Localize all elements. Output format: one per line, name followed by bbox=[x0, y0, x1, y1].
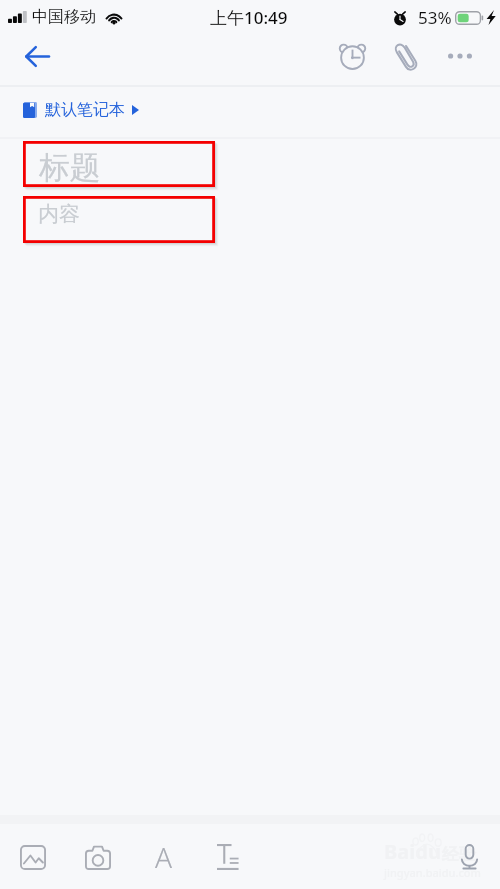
button[interactable]: Title field bbox=[23, 141, 215, 187]
button[interactable]: Back bbox=[13, 32, 61, 80]
staticText: 内容 bbox=[38, 201, 80, 227]
staticText: 标题 bbox=[39, 148, 101, 187]
staticText: jingyan.baidu.com bbox=[384, 865, 481, 880]
staticText: 53% bbox=[418, 6, 452, 29]
button[interactable]: Camera bbox=[75, 834, 121, 880]
button[interactable]: Content field bbox=[23, 196, 215, 243]
staticText: 经验 bbox=[442, 844, 476, 865]
button[interactable]: 默认笔记本 bbox=[0, 94, 139, 126]
staticText: A bbox=[155, 838, 173, 876]
staticText: 上午10:49 bbox=[210, 6, 288, 29]
button[interactable]: More options bbox=[438, 34, 482, 78]
button[interactable]: Font style bbox=[141, 834, 187, 880]
button[interactable]: Text formatting bbox=[205, 834, 251, 880]
button[interactable]: Attachment bbox=[385, 36, 429, 80]
button[interactable]: Insert image bbox=[10, 834, 56, 880]
staticText: 中国移动 bbox=[32, 7, 96, 27]
button[interactable]: Reminder bbox=[330, 34, 374, 78]
button[interactable]: Voice input bbox=[447, 835, 491, 879]
staticText: 默认笔记本 bbox=[45, 100, 125, 120]
